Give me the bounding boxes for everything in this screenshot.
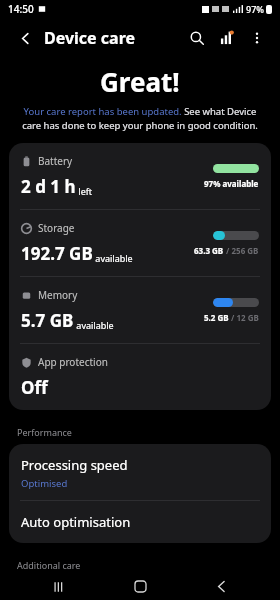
button[interactable]: Home xyxy=(118,573,162,600)
button[interactable]: Storage xyxy=(9,210,271,276)
staticText: / 12 GB xyxy=(229,312,259,323)
staticText: Optimised xyxy=(21,477,68,490)
staticText: available xyxy=(93,252,133,264)
staticText: 63.3 GB xyxy=(194,245,224,256)
button[interactable]: Back xyxy=(12,25,38,51)
button[interactable]: Recents xyxy=(37,573,81,600)
button[interactable]: Auto optimisation xyxy=(9,501,271,543)
staticText: Off xyxy=(21,376,48,399)
button[interactable]: Processing speed xyxy=(9,444,271,500)
staticText: Your care report has been updated. See w… xyxy=(14,105,266,132)
staticText: Storage xyxy=(38,221,75,235)
staticText: 14:50 xyxy=(8,2,34,16)
button[interactable]: More options xyxy=(242,23,272,53)
staticText: 192.7 GB xyxy=(21,242,93,265)
staticText: Device care xyxy=(44,27,136,49)
staticText: Performance xyxy=(17,426,72,438)
button[interactable]: Memory xyxy=(9,277,271,343)
staticText: available xyxy=(74,319,114,331)
staticText: Additional care xyxy=(17,559,81,571)
staticText: 97% available xyxy=(204,178,259,189)
staticText: Processing speed xyxy=(21,456,128,474)
staticText: Memory xyxy=(38,288,78,302)
staticText: 97% xyxy=(246,3,264,15)
staticText: / 256 GB xyxy=(224,245,259,256)
staticText: Battery xyxy=(38,154,73,168)
button[interactable]: Search xyxy=(182,23,212,53)
staticText: 5.2 GB xyxy=(204,312,229,323)
staticText: App protection xyxy=(38,355,108,369)
button[interactable]: App protection xyxy=(9,344,271,410)
button[interactable]: Battery xyxy=(9,143,271,209)
staticText: 5.7 GB xyxy=(21,309,74,332)
staticText: Auto optimisation xyxy=(21,513,131,531)
button[interactable]: Statistics xyxy=(212,23,242,53)
staticText: Great! xyxy=(100,64,180,99)
staticText: left xyxy=(76,185,93,197)
button[interactable]: Back xyxy=(199,573,243,600)
staticText: 2 d 1 h xyxy=(21,175,76,198)
